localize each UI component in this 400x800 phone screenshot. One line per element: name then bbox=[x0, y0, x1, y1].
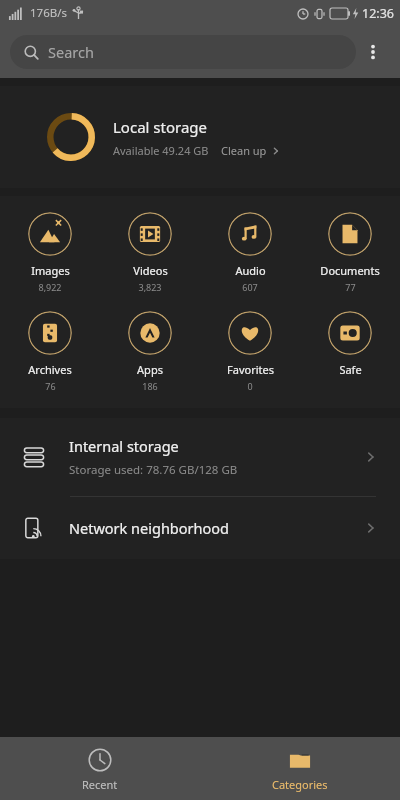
staticText: 186 bbox=[142, 380, 158, 392]
staticText: Documents bbox=[320, 263, 380, 278]
button[interactable]: More options bbox=[356, 32, 390, 72]
button[interactable]: Local storage bbox=[0, 86, 400, 188]
staticText: Favorites bbox=[227, 362, 274, 377]
button[interactable]: Network neighborhood bbox=[0, 497, 400, 559]
staticText: Safe bbox=[339, 362, 362, 377]
staticText: 12:36 bbox=[362, 5, 394, 22]
staticText: 76 bbox=[45, 380, 56, 392]
staticText: Videos bbox=[133, 263, 168, 278]
staticText: 8,922 bbox=[38, 281, 62, 293]
staticText: 607 bbox=[242, 281, 258, 293]
button[interactable]: Videos bbox=[100, 210, 200, 295]
staticText: Recent bbox=[82, 777, 118, 792]
staticText: Images bbox=[31, 263, 70, 278]
staticText: 0 bbox=[247, 380, 253, 392]
staticText: Clean up bbox=[221, 143, 267, 158]
staticText: Available 49.24 GB bbox=[113, 143, 209, 158]
button[interactable]: Audio bbox=[200, 210, 300, 295]
button[interactable]: Safe bbox=[300, 309, 400, 394]
button[interactable]: Apps bbox=[100, 309, 200, 394]
staticText: 77 bbox=[345, 281, 356, 293]
button[interactable]: Archives bbox=[0, 309, 100, 394]
staticText: Apps bbox=[137, 362, 163, 377]
button[interactable]: Internal storage bbox=[0, 418, 400, 496]
button[interactable]: Categories bbox=[200, 737, 400, 800]
button[interactable]: Images bbox=[0, 210, 100, 295]
staticText: Internal storage bbox=[69, 436, 179, 456]
staticText: Search bbox=[48, 42, 94, 62]
staticText: Network neighborhood bbox=[69, 518, 364, 538]
staticText: Archives bbox=[28, 362, 72, 377]
staticText: 3,823 bbox=[138, 281, 162, 293]
staticText: Categories bbox=[272, 777, 328, 792]
staticText: Local storage bbox=[113, 117, 207, 137]
staticText: 176B/s bbox=[30, 5, 67, 21]
button[interactable]: Recent bbox=[0, 737, 200, 800]
button[interactable]: Search bbox=[10, 35, 356, 69]
staticText: Storage used: 78.76 GB/128 GB bbox=[69, 462, 238, 478]
staticText: Audio bbox=[235, 263, 266, 278]
button[interactable]: Documents bbox=[300, 210, 400, 295]
button[interactable]: Favorites bbox=[200, 309, 300, 394]
